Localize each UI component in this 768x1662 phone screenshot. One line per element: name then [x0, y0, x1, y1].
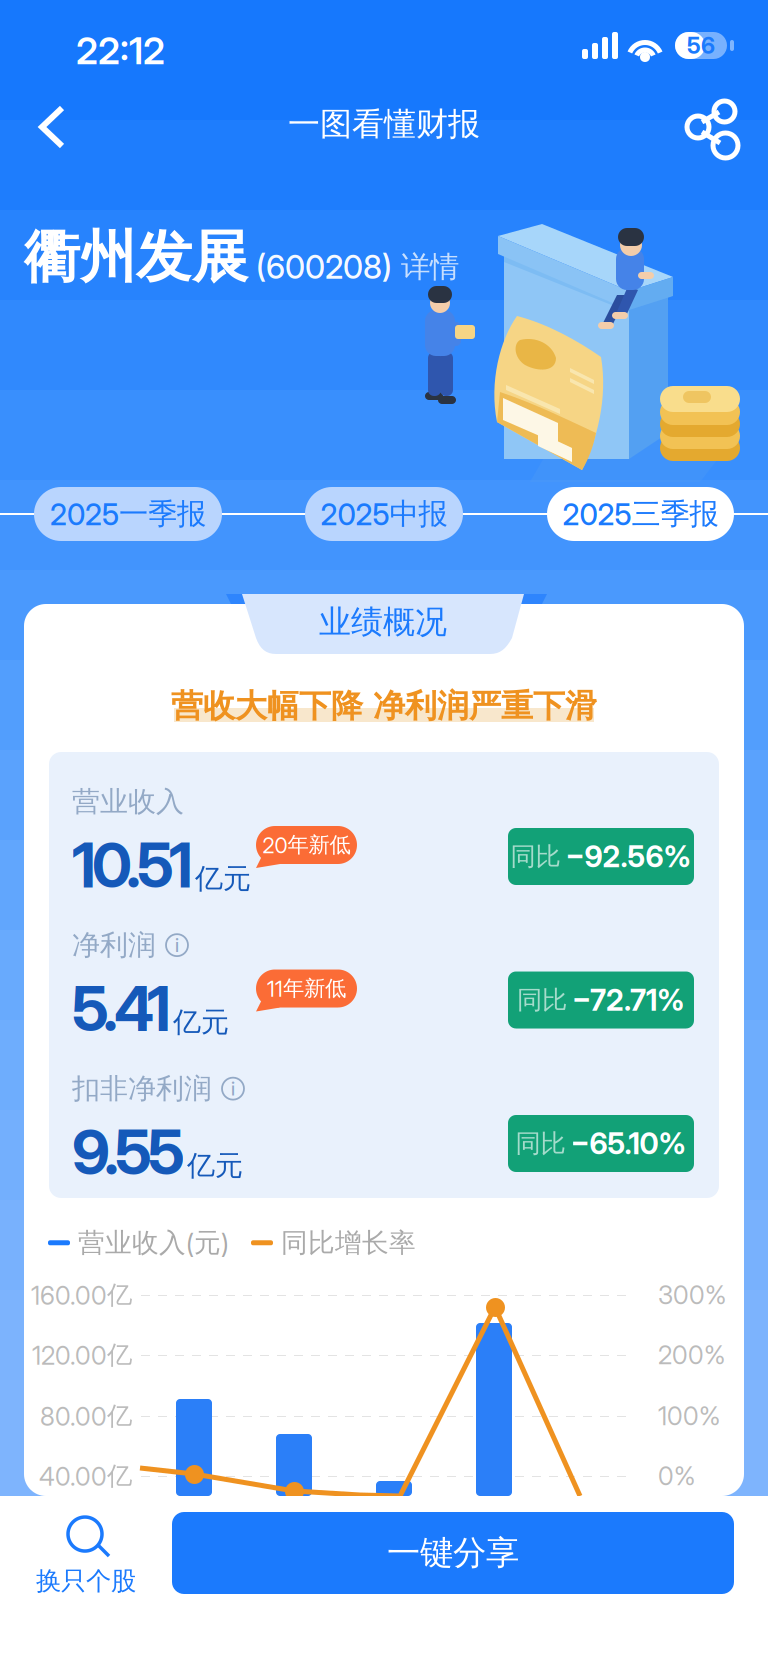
button[interactable]: 2025中报	[305, 487, 463, 541]
staticText: i	[175, 934, 179, 956]
button[interactable]: 2025三季报	[547, 487, 734, 541]
staticText: 同比	[510, 840, 560, 872]
staticText: 2025三季报	[562, 495, 718, 532]
staticText: 同比	[515, 1127, 565, 1159]
button[interactable]: 业绩概况	[218, 592, 548, 656]
staticText: 10.51	[72, 828, 193, 902]
button[interactable]: Back	[14, 92, 90, 162]
staticText: 同比	[517, 984, 567, 1016]
staticText: 业绩概况	[319, 602, 447, 642]
staticText: 净利润	[72, 927, 156, 963]
staticText: 衢州发展	[24, 222, 248, 292]
staticText: 100%	[658, 1401, 720, 1431]
staticText: 营收大幅下降 净利润严重下滑	[171, 686, 597, 726]
staticText: 一键分享	[387, 1532, 519, 1574]
staticText: 营业收入(元)	[70, 1226, 229, 1260]
staticText: 80.00亿	[40, 1400, 132, 1432]
staticText: 5.41	[72, 971, 171, 1046]
staticText: 亿元	[173, 1004, 229, 1040]
staticText: 换只个股	[36, 1565, 136, 1597]
staticText: 40.00亿	[39, 1460, 132, 1492]
button[interactable]: Share	[672, 92, 748, 162]
button[interactable]: 2025一季报	[34, 487, 222, 541]
staticText: 0%	[658, 1461, 695, 1491]
staticText: −92.56%	[565, 839, 691, 874]
staticText: 亿元	[187, 1148, 243, 1183]
staticText: 扣非净利润	[72, 1071, 212, 1106]
staticText: 11年新低	[267, 975, 346, 1002]
staticText: 9.55	[72, 1115, 185, 1189]
staticText: 300%	[658, 1280, 726, 1310]
button[interactable]: 一键分享	[172, 1512, 734, 1594]
staticText: 一图看懂财报	[288, 104, 480, 144]
staticText: −72.71%	[572, 982, 685, 1018]
staticText: i	[231, 1077, 235, 1100]
staticText: (600208)	[248, 248, 392, 286]
staticText: 20年新低	[262, 832, 350, 858]
staticText: −65.10%	[570, 1126, 686, 1161]
staticText: 56	[687, 32, 715, 59]
staticText: 22:12	[76, 28, 165, 73]
staticText: 亿元	[195, 861, 251, 896]
staticText: 详情	[392, 249, 459, 286]
button[interactable]: 换只个股	[24, 1510, 148, 1598]
staticText: 同比增长率	[273, 1226, 416, 1260]
staticText: 营业收入	[72, 784, 184, 819]
staticText: 120.00亿	[32, 1339, 132, 1371]
staticText: 160.00亿	[31, 1279, 132, 1311]
staticText: 2025一季报	[50, 495, 206, 532]
staticText: 200%	[658, 1340, 725, 1370]
staticText: 2025中报	[320, 495, 447, 532]
